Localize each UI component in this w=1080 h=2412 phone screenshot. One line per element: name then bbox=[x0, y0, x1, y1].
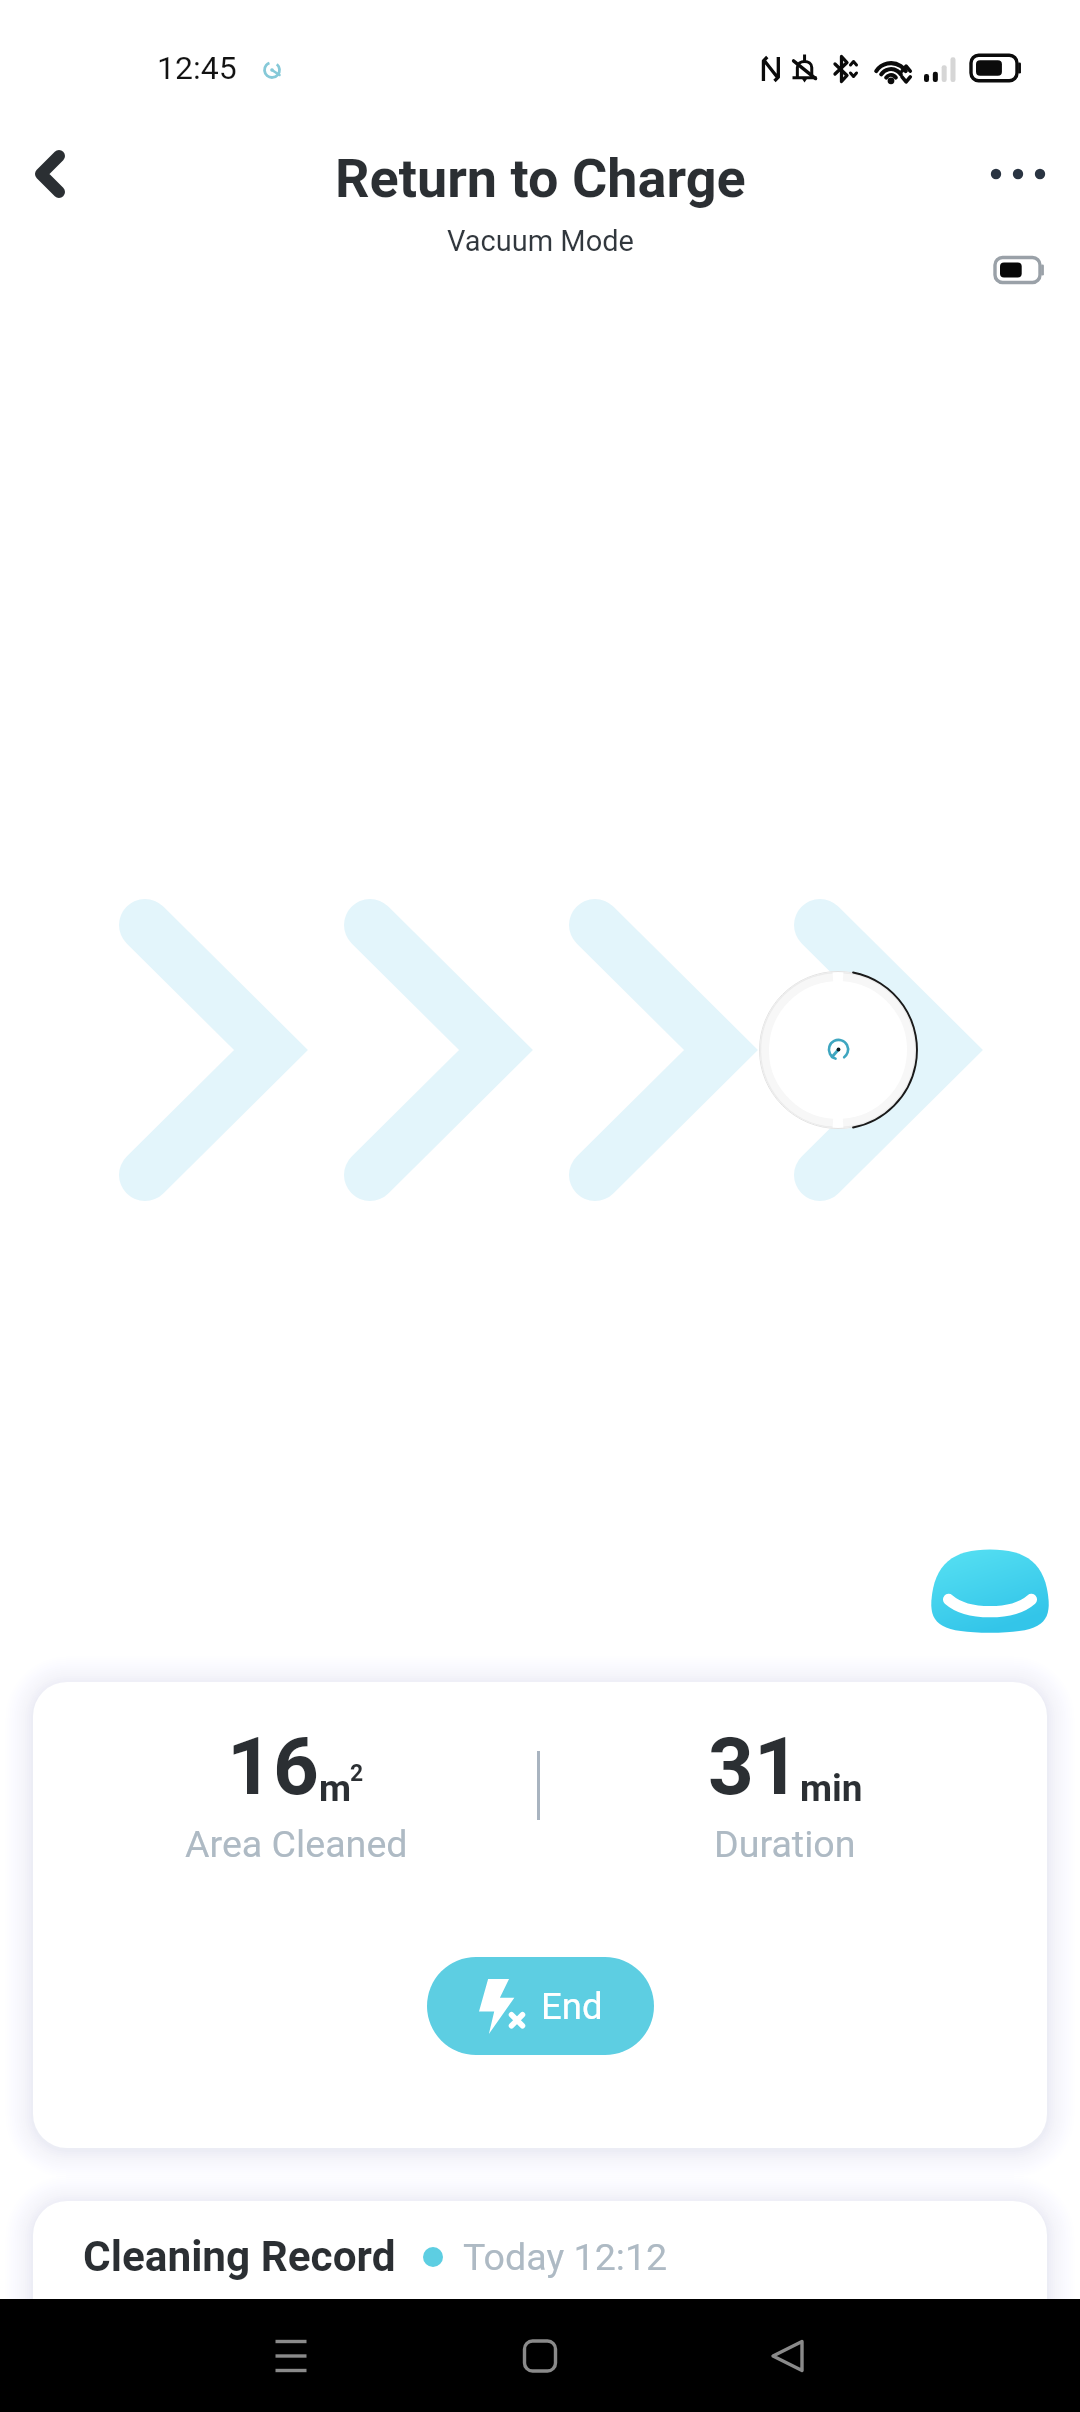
button[interactable]: End bbox=[427, 1957, 654, 2055]
button[interactable]: Recent apps bbox=[236, 2301, 346, 2411]
staticText: Today 12:12 bbox=[463, 2235, 668, 2279]
button[interactable]: Home bbox=[485, 2301, 595, 2411]
staticText: 16 bbox=[227, 1720, 319, 1814]
staticText: m bbox=[319, 1767, 352, 1810]
staticText: 31 bbox=[708, 1720, 800, 1814]
button[interactable] bbox=[33, 2201, 1047, 2411]
staticText: 2 bbox=[350, 1760, 364, 1787]
staticText: Vacuum Mode bbox=[447, 224, 634, 258]
staticText: Duration bbox=[714, 1822, 856, 1866]
staticText: Cleaning Record bbox=[83, 2232, 396, 2282]
staticText: min bbox=[800, 1767, 863, 1810]
staticText: 12:45 bbox=[157, 49, 237, 87]
button[interactable]: Back bbox=[733, 2301, 843, 2411]
button[interactable]: More options bbox=[966, 122, 1070, 226]
staticText: Return to Charge bbox=[335, 147, 746, 210]
staticText: Area Cleaned bbox=[185, 1822, 408, 1866]
staticText: End bbox=[541, 1985, 603, 2028]
button[interactable]: Back bbox=[0, 122, 104, 226]
